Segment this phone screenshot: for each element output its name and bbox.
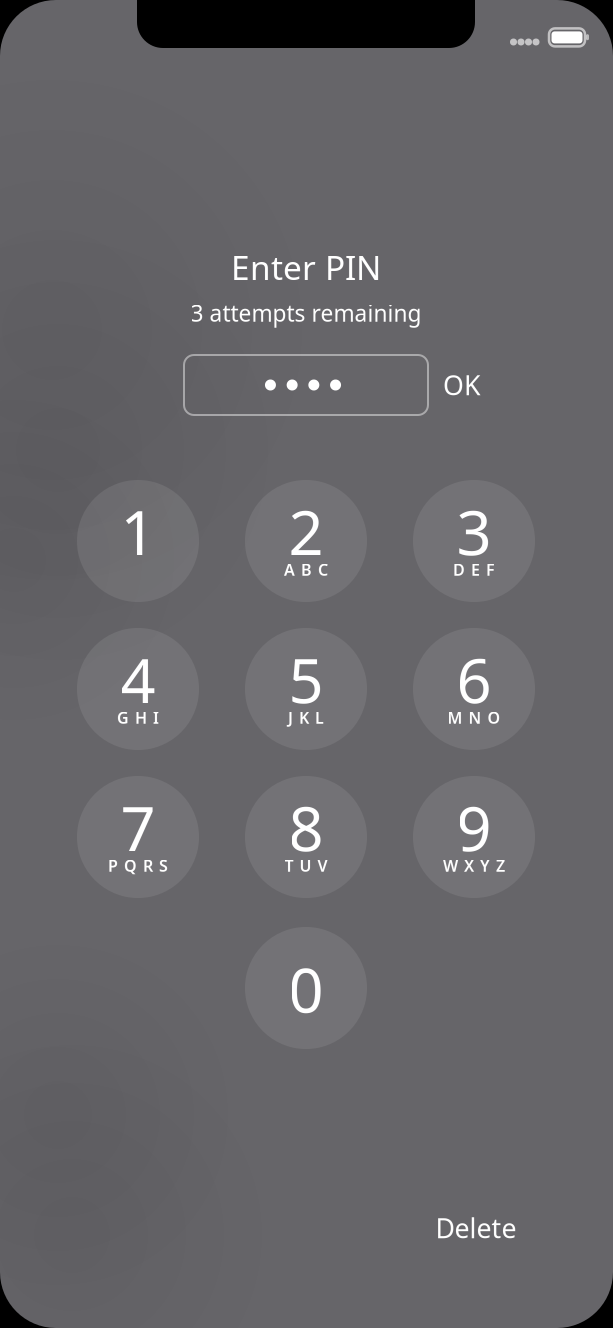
staticText: JKL: [288, 707, 324, 728]
button[interactable]: 4: [77, 628, 199, 750]
staticText: 4: [120, 639, 155, 720]
button[interactable]: 6: [413, 628, 535, 750]
button[interactable]: 1: [77, 480, 199, 602]
staticText: MNO: [447, 707, 500, 728]
button[interactable]: OK: [426, 358, 498, 412]
staticText: 8: [288, 787, 323, 868]
button[interactable]: 7: [77, 776, 199, 898]
button[interactable]: 8: [245, 776, 367, 898]
staticText: TUV: [284, 855, 327, 876]
staticText: 6: [456, 639, 491, 720]
staticText: WXYZ: [443, 855, 505, 876]
button[interactable]: 0: [245, 927, 367, 1049]
staticText: 3 attempts remaining: [190, 298, 421, 328]
staticText: DEF: [453, 559, 495, 580]
button[interactable]: Delete: [411, 1197, 541, 1259]
staticText: 3: [456, 491, 491, 572]
button[interactable]: 9: [413, 776, 535, 898]
button[interactable]: 5: [245, 628, 367, 750]
staticText: PQRS: [108, 855, 168, 876]
staticText: 7: [120, 787, 155, 868]
staticText: 5: [288, 639, 323, 720]
staticText: ABC: [284, 559, 328, 580]
staticText: Delete: [435, 1210, 516, 1246]
staticText: 1: [120, 491, 155, 572]
staticText: 9: [456, 787, 491, 868]
button[interactable]: PIN entry field, 4 digits entered: [184, 355, 428, 415]
staticText: 0: [288, 948, 323, 1030]
button[interactable]: 3: [413, 480, 535, 602]
staticText: 2: [288, 491, 323, 572]
staticText: GHI: [117, 707, 159, 728]
staticText: Enter PIN: [231, 245, 381, 289]
staticText: OK: [443, 367, 481, 403]
button[interactable]: 2: [245, 480, 367, 602]
